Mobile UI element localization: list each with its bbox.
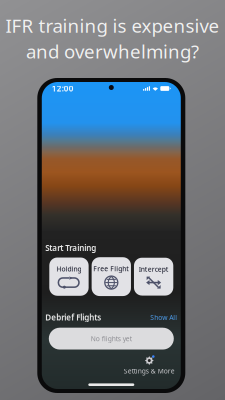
staticText: No flights yet (91, 334, 132, 343)
button[interactable]: Free Flight (92, 257, 131, 296)
staticText: IFR training is expensive (5, 13, 219, 38)
button[interactable]: Intercept (134, 258, 173, 296)
staticText: Holding (56, 264, 81, 273)
staticText: Free Flight (93, 264, 129, 273)
staticText: and overwhelming? (26, 39, 199, 64)
button[interactable]: Settings & More (124, 355, 175, 375)
staticText: Debrief Flights (45, 312, 101, 323)
staticText: Show All (150, 313, 177, 322)
button[interactable]: Holding (49, 257, 89, 296)
staticText: Intercept (139, 265, 169, 274)
staticText: Start Training (45, 243, 96, 253)
staticText: 12:00 (52, 83, 74, 94)
button[interactable]: Show All (150, 313, 177, 322)
staticText: Settings & More (124, 366, 175, 375)
